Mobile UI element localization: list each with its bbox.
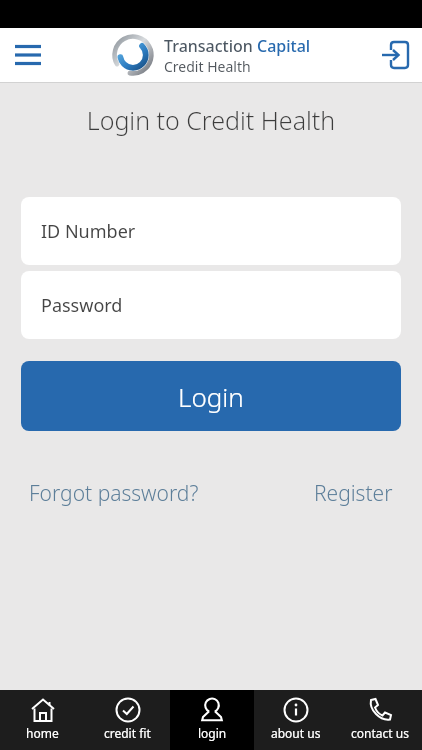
button[interactable]: Password: [21, 271, 401, 339]
staticText: Password: [41, 293, 123, 318]
button[interactable]: contact us: [338, 690, 422, 750]
button[interactable]: login: [170, 690, 254, 750]
button[interactable]: ID Number: [21, 197, 401, 265]
button[interactable]: Register: [314, 479, 393, 508]
button[interactable]: about us: [254, 690, 338, 750]
staticText: Transaction Capital: [164, 35, 311, 57]
staticText: Login to Credit Health: [0, 103, 422, 137]
button[interactable]: credit fit: [85, 690, 170, 750]
staticText: login: [198, 725, 227, 741]
staticText: credit fit: [104, 725, 151, 741]
staticText: contact us: [351, 725, 409, 741]
staticText: Credit Health: [164, 57, 251, 76]
button[interactable]: Forgot password?: [29, 479, 199, 508]
button[interactable]: home: [0, 690, 85, 750]
button[interactable]: [8, 35, 48, 75]
button[interactable]: [376, 35, 416, 75]
button[interactable]: Login: [21, 361, 401, 431]
staticText: home: [26, 725, 59, 741]
staticText: about us: [271, 725, 321, 741]
staticText: Login: [178, 379, 244, 414]
staticText: ID Number: [41, 219, 136, 244]
